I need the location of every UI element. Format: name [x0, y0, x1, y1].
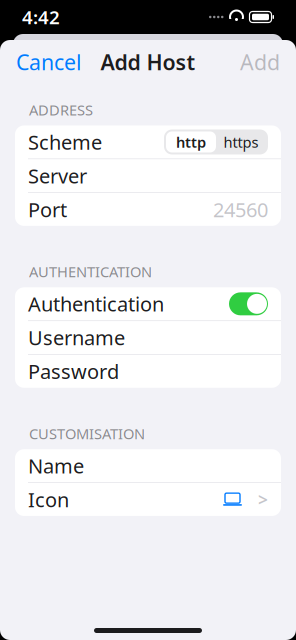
button[interactable]: Cancel: [0, 38, 98, 86]
button[interactable]: Scheme: [15, 125, 281, 158]
staticText: Add: [240, 48, 280, 76]
staticText: Password: [28, 358, 119, 385]
staticText: CUSTOMISATION: [29, 424, 145, 443]
staticText: Name: [28, 452, 84, 479]
staticText: >: [258, 488, 268, 511]
staticText: Authentication: [28, 291, 164, 317]
staticText: Port: [28, 196, 67, 223]
staticText: 4:42: [22, 5, 60, 29]
staticText: Cancel: [16, 48, 82, 76]
staticText: https: [223, 132, 258, 152]
button[interactable]: Password: [15, 355, 281, 388]
staticText: AUTHENTICATION: [29, 262, 152, 281]
staticText: 24560: [213, 196, 268, 223]
button[interactable]: Add: [224, 38, 296, 86]
staticText: ADDRESS: [29, 100, 93, 119]
staticText: Scheme: [28, 129, 102, 155]
button[interactable]: Server: [15, 159, 281, 192]
button[interactable]: Username: [15, 321, 281, 354]
staticText: Icon: [28, 486, 69, 513]
button[interactable]: Icon: [15, 483, 281, 516]
button[interactable]: Port: [15, 193, 281, 226]
staticText: Server: [28, 162, 87, 189]
button[interactable]: Name: [15, 449, 281, 482]
staticText: Username: [28, 324, 125, 351]
staticText: Add Host: [100, 48, 195, 76]
button[interactable]: Authentication: [15, 287, 281, 320]
staticText: http: [176, 132, 206, 152]
